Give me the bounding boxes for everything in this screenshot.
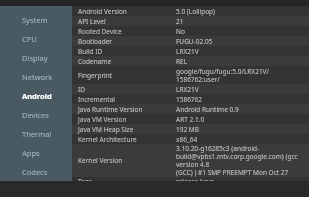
button[interactable]: Tags — [72, 177, 309, 181]
staticText: Android Version — [78, 7, 176, 16]
staticText: Codecs — [22, 167, 48, 177]
staticText: 3.10.20-g16285c3 (android- build@vpbs1.m… — [176, 144, 309, 177]
button[interactable]: Thermal — [0, 124, 72, 143]
staticText: Bootloader — [78, 37, 176, 46]
staticText: Kernel Architecture — [78, 135, 176, 144]
staticText: Devices — [22, 110, 49, 120]
button[interactable]: Codecs — [0, 162, 72, 181]
button[interactable]: Fingerprint — [72, 66, 309, 84]
staticText: Java Runtime Version — [78, 105, 176, 114]
staticText: Codename — [78, 57, 176, 66]
staticText: 5.0 (Lollipop) — [176, 7, 216, 16]
button[interactable]: Java Runtime Version — [72, 104, 309, 114]
button[interactable]: Java VM Heap Size — [72, 124, 309, 134]
button[interactable]: System — [0, 10, 72, 29]
staticText: Thermal — [22, 129, 52, 139]
staticText: 1586762 — [176, 95, 203, 104]
staticText: LRX21V — [176, 85, 199, 94]
button[interactable]: Apps — [0, 143, 72, 162]
staticText: google/fugu/fugu:5.0/LRX21V/1586762:user… — [176, 67, 309, 84]
button[interactable]: Network — [0, 67, 72, 86]
staticText: Incremental — [78, 95, 176, 104]
button[interactable]: CPU — [0, 29, 72, 48]
staticText: No — [176, 27, 185, 36]
staticText: Display — [22, 53, 48, 63]
button[interactable]: Kernel Architecture — [72, 134, 309, 144]
button[interactable]: Incremental — [72, 94, 309, 104]
button[interactable]: Bootloader — [72, 36, 309, 46]
staticText: Build ID — [78, 47, 176, 56]
staticText: CPU — [22, 34, 37, 44]
staticText: Android Runtime 0.9 — [176, 105, 239, 114]
button[interactable]: ID — [72, 84, 309, 94]
staticText: Network — [22, 72, 53, 82]
staticText: 192 MB — [176, 125, 199, 134]
button[interactable]: Rooted Device — [72, 26, 309, 36]
staticText: Java VM Heap Size — [78, 125, 176, 134]
staticText: Tags — [78, 177, 176, 181]
button[interactable]: Build ID — [72, 46, 309, 56]
staticText: release-keys — [176, 177, 214, 181]
staticText: API Level — [78, 17, 176, 26]
staticText: Java VM Version — [78, 115, 176, 124]
staticText: Rooted Device — [78, 27, 176, 36]
staticText: REL — [176, 57, 188, 66]
staticText: ART 2.1.0 — [176, 115, 205, 124]
button[interactable]: Devices — [0, 105, 72, 124]
staticText: 21 — [176, 17, 184, 26]
staticText: System — [22, 15, 48, 25]
button[interactable]: Android — [0, 86, 72, 105]
staticText: LRX21V — [176, 47, 199, 56]
button[interactable]: Kernel Version — [72, 144, 309, 177]
button[interactable]: Android Version — [72, 6, 309, 16]
staticText: x86_64 — [176, 135, 198, 144]
staticText: ID — [78, 85, 176, 94]
staticText: Android — [22, 91, 52, 101]
button[interactable]: Java VM Version — [72, 114, 309, 124]
button[interactable]: Display — [0, 48, 72, 67]
staticText: Kernel Version — [78, 156, 176, 165]
staticText: Fingerprint — [78, 71, 176, 80]
button[interactable]: Codename — [72, 56, 309, 66]
staticText: FUGU-02.05 — [176, 37, 213, 46]
staticText: Apps — [22, 148, 40, 158]
button[interactable]: API Level — [72, 16, 309, 26]
